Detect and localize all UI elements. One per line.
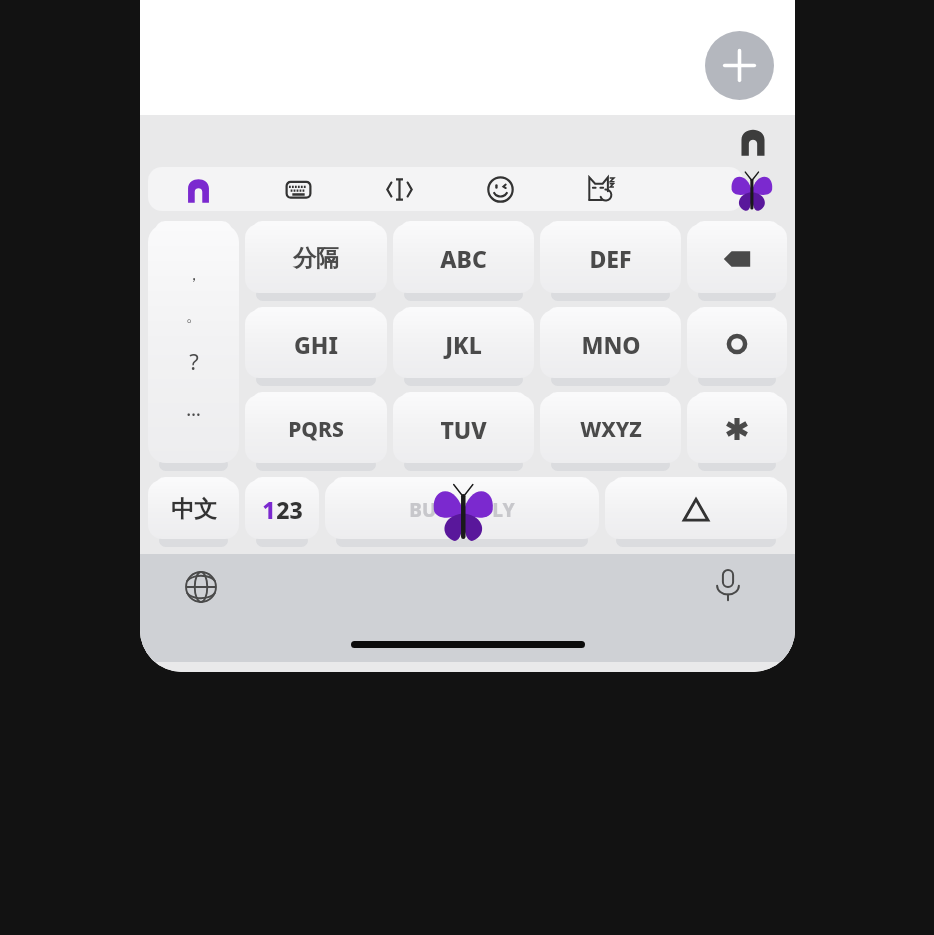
button[interactable]: Add bbox=[705, 31, 774, 100]
staticText: 中文 bbox=[171, 495, 217, 524]
button[interactable]: Avatar bbox=[737, 125, 769, 157]
button[interactable]: ， bbox=[148, 221, 239, 471]
button[interactable]: Language bbox=[184, 570, 218, 604]
staticText: JKL bbox=[445, 329, 482, 360]
staticText: ， bbox=[186, 265, 202, 285]
button[interactable]: WXYZ bbox=[540, 392, 681, 471]
button[interactable]: PQRS bbox=[245, 392, 387, 471]
staticText: ABC bbox=[440, 243, 487, 274]
staticText: 1 bbox=[262, 494, 276, 525]
staticText: WXYZ bbox=[580, 415, 642, 444]
button[interactable]: Voice input bbox=[711, 568, 745, 602]
staticText: PQRS bbox=[288, 415, 344, 444]
button[interactable]: ABC bbox=[393, 221, 534, 301]
button[interactable] bbox=[687, 392, 787, 471]
button[interactable] bbox=[687, 221, 787, 301]
staticText: GHI bbox=[294, 329, 338, 360]
button[interactable] bbox=[605, 477, 787, 547]
button[interactable]: Emoji bbox=[450, 167, 551, 211]
button[interactable]: 中文 bbox=[148, 477, 239, 547]
button[interactable]: MNO bbox=[540, 307, 681, 386]
staticText: MNO bbox=[581, 329, 641, 360]
staticText: 分隔 bbox=[293, 244, 339, 273]
staticText: 。 bbox=[186, 306, 202, 326]
staticText: 23 bbox=[276, 494, 303, 525]
staticText: DEF bbox=[589, 243, 632, 274]
button[interactable]: DEF bbox=[540, 221, 681, 301]
button[interactable]: GHI bbox=[245, 307, 387, 386]
button[interactable]: 1 bbox=[245, 477, 319, 547]
button[interactable]: JKL bbox=[393, 307, 534, 386]
button[interactable]: TUV bbox=[393, 392, 534, 471]
staticText: BUTTERFLY bbox=[409, 497, 515, 523]
button[interactable]: 分隔 bbox=[245, 221, 387, 301]
button[interactable]: Sticker bbox=[551, 167, 652, 211]
button[interactable]: Keyboard bbox=[248, 167, 349, 211]
button[interactable] bbox=[687, 307, 787, 386]
staticText: TUV bbox=[440, 414, 487, 445]
button[interactable]: Home bbox=[148, 167, 248, 211]
staticText: … bbox=[186, 397, 201, 422]
button[interactable]: BUTTERFLY bbox=[325, 477, 599, 547]
staticText: ? bbox=[189, 346, 199, 376]
button[interactable]: Cursor bbox=[349, 167, 450, 211]
button[interactable]: Theme bbox=[729, 169, 773, 213]
